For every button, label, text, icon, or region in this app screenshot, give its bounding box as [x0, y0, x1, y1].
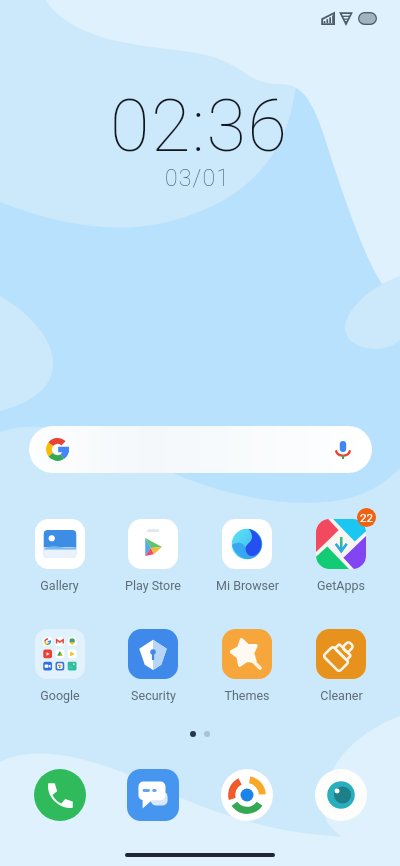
- other: Status icons: [321, 12, 379, 25]
- staticText: GetApps: [317, 578, 365, 593]
- button[interactable]: 03/01: [165, 165, 231, 192]
- button[interactable]: Home: [125, 853, 275, 857]
- button[interactable]: Camera: [221, 769, 273, 821]
- button[interactable]: Search: [29, 426, 372, 473]
- staticText: 22: [360, 511, 373, 524]
- button[interactable]: Play Store: [106, 519, 200, 593]
- button[interactable]: Gallery: [13, 519, 106, 593]
- staticText: Themes: [224, 688, 270, 703]
- button[interactable]: Mi Browser: [200, 519, 294, 593]
- staticText: Google: [40, 688, 80, 703]
- staticText: Security: [131, 688, 176, 703]
- button[interactable]: Messages: [127, 769, 179, 821]
- button[interactable]: Security: [106, 629, 200, 703]
- button[interactable]: Phone: [34, 769, 86, 821]
- button[interactable]: Cleaner: [294, 629, 388, 703]
- staticText: Play Store: [125, 578, 181, 593]
- button[interactable]: Google: [13, 629, 106, 703]
- staticText: Cleaner: [320, 688, 363, 703]
- staticText: Mi Browser: [216, 578, 279, 593]
- button[interactable]: 22: [294, 519, 388, 593]
- button[interactable]: Settings: [315, 769, 367, 821]
- button[interactable]: 02:36: [110, 84, 289, 168]
- button[interactable]: Themes: [200, 629, 294, 703]
- staticText: Gallery: [40, 578, 79, 593]
